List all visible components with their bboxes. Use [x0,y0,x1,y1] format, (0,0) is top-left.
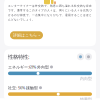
staticText: 性格特性: [8,53,29,60]
button[interactable]: Share [77,53,84,60]
staticText: 慎重型 [80,97,92,100]
staticText: 内向型 [80,76,92,81]
button[interactable]: 詳細はこちら [10,31,43,39]
staticText: → [38,34,40,37]
staticText: エネルギー:69% 外向型 [8,64,49,70]
button[interactable]: More info [85,53,92,60]
staticText: 社交: 56% 接触型 [8,85,38,90]
staticText: エンターテイナーは外交的で、熱意に満ち溢れる社交的な存在です。通常するこのタイプ… [8,4,92,21]
staticText: 詳細はこちら [13,33,37,38]
